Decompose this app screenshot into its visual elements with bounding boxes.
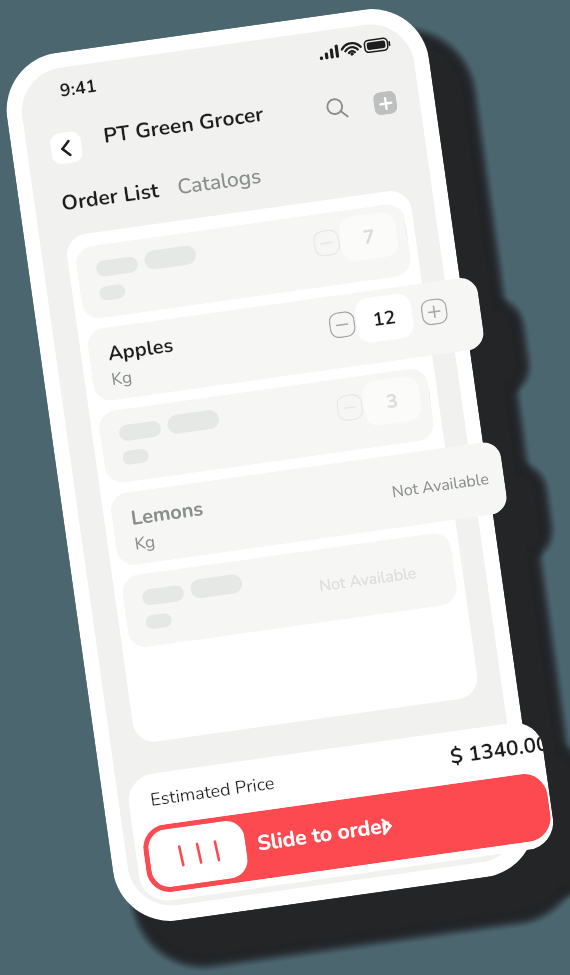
staticText: 12 [371, 304, 397, 333]
staticText: Lemons [129, 495, 205, 532]
button[interactable]: Slide to order [140, 771, 554, 895]
staticText: 9:41 [58, 74, 98, 104]
staticText: Apples [106, 332, 175, 367]
staticText: Slide to order [256, 811, 392, 858]
button[interactable]: Decrease [327, 310, 357, 339]
button[interactable]: Order List [60, 176, 161, 218]
staticText: Kg [110, 365, 134, 391]
button[interactable]: Not Available [120, 531, 459, 649]
staticText: Estimated Price [149, 771, 276, 813]
button[interactable]: Back [49, 130, 84, 165]
staticText: Kg [133, 530, 157, 556]
staticText: Order List [60, 176, 161, 218]
staticText: Not Available [318, 562, 418, 597]
button[interactable]: Add item [372, 90, 398, 116]
button[interactable]: Apples [85, 276, 486, 403]
button[interactable]: Decrease [312, 228, 341, 258]
staticText: 7 [361, 223, 377, 251]
button[interactable]: Increase [420, 297, 449, 326]
button[interactable]: Lemons [109, 440, 509, 567]
button[interactable]: Decrease [74, 202, 413, 321]
button[interactable]: Increase [427, 383, 432, 409]
button[interactable]: Search [320, 91, 354, 125]
staticText: 3 [385, 388, 400, 415]
staticText: Not Available [390, 468, 491, 503]
button[interactable]: Increase [404, 219, 409, 245]
staticText: Catalogs [175, 162, 264, 202]
button[interactable]: Decrease [335, 393, 364, 422]
button[interactable]: Decrease [97, 366, 436, 485]
staticText: $ 1340.00 [448, 730, 544, 772]
button[interactable]: Catalogs [175, 162, 264, 202]
staticText: PT Green Grocer [102, 100, 266, 151]
